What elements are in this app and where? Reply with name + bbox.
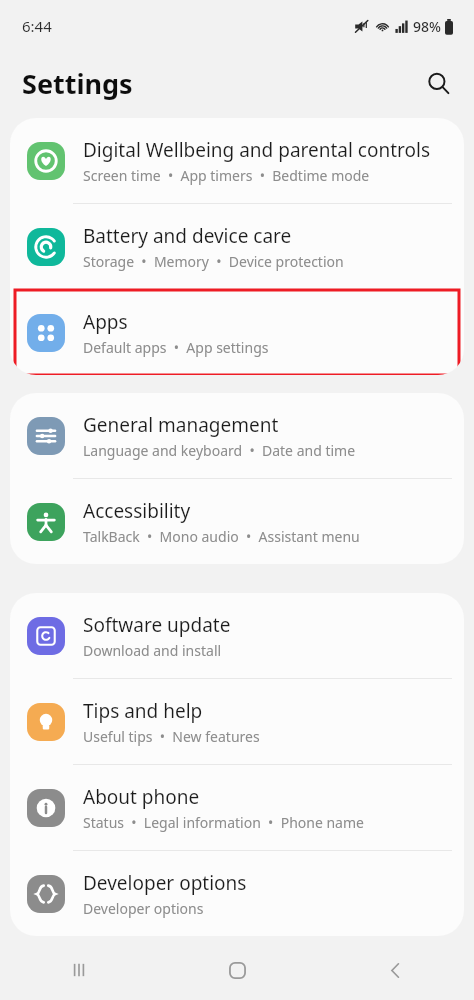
button[interactable]: Home bbox=[158, 940, 316, 1000]
staticText: TalkBack • Mono audio • Assistant menu bbox=[83, 527, 360, 546]
button[interactable]: Apps bbox=[15, 290, 459, 375]
button[interactable]: Search bbox=[416, 61, 460, 105]
staticText: Developer options bbox=[83, 870, 247, 896]
button[interactable]: General management bbox=[10, 393, 464, 478]
button[interactable]: Accessibility bbox=[10, 479, 464, 564]
staticText: Screen time • App timers • Bedtime mode bbox=[83, 166, 370, 185]
staticText: Default apps • App settings bbox=[83, 338, 269, 357]
staticText: Useful tips • New features bbox=[83, 727, 260, 746]
button[interactable]: Back bbox=[316, 940, 474, 1000]
button[interactable]: Battery and device care bbox=[10, 204, 464, 289]
button[interactable]: About phone bbox=[10, 765, 464, 850]
staticText: Software update bbox=[83, 612, 231, 638]
button[interactable]: Developer options bbox=[10, 851, 464, 936]
staticText: Download and install bbox=[83, 641, 222, 660]
staticText: 6:44 bbox=[22, 16, 52, 36]
staticText: Storage • Memory • Device protection bbox=[83, 252, 344, 271]
staticText: Battery and device care bbox=[83, 223, 292, 249]
staticText: Developer options bbox=[83, 899, 204, 918]
button[interactable]: Digital Wellbeing and parental controls bbox=[10, 118, 464, 203]
button[interactable]: Recents bbox=[0, 940, 158, 1000]
staticText: About phone bbox=[83, 784, 200, 810]
staticText: General management bbox=[83, 412, 279, 438]
staticText: 98% bbox=[413, 17, 441, 36]
button[interactable]: Software update bbox=[10, 593, 464, 678]
staticText: Settings bbox=[22, 65, 133, 102]
button[interactable]: Tips and help bbox=[10, 679, 464, 764]
staticText: Digital Wellbeing and parental controls bbox=[83, 137, 431, 163]
staticText: Accessibility bbox=[83, 498, 191, 524]
staticText: Language and keyboard • Date and time bbox=[83, 441, 356, 460]
staticText: Apps bbox=[83, 309, 128, 335]
staticText: Status • Legal information • Phone name bbox=[83, 813, 364, 832]
staticText: Tips and help bbox=[83, 698, 203, 724]
